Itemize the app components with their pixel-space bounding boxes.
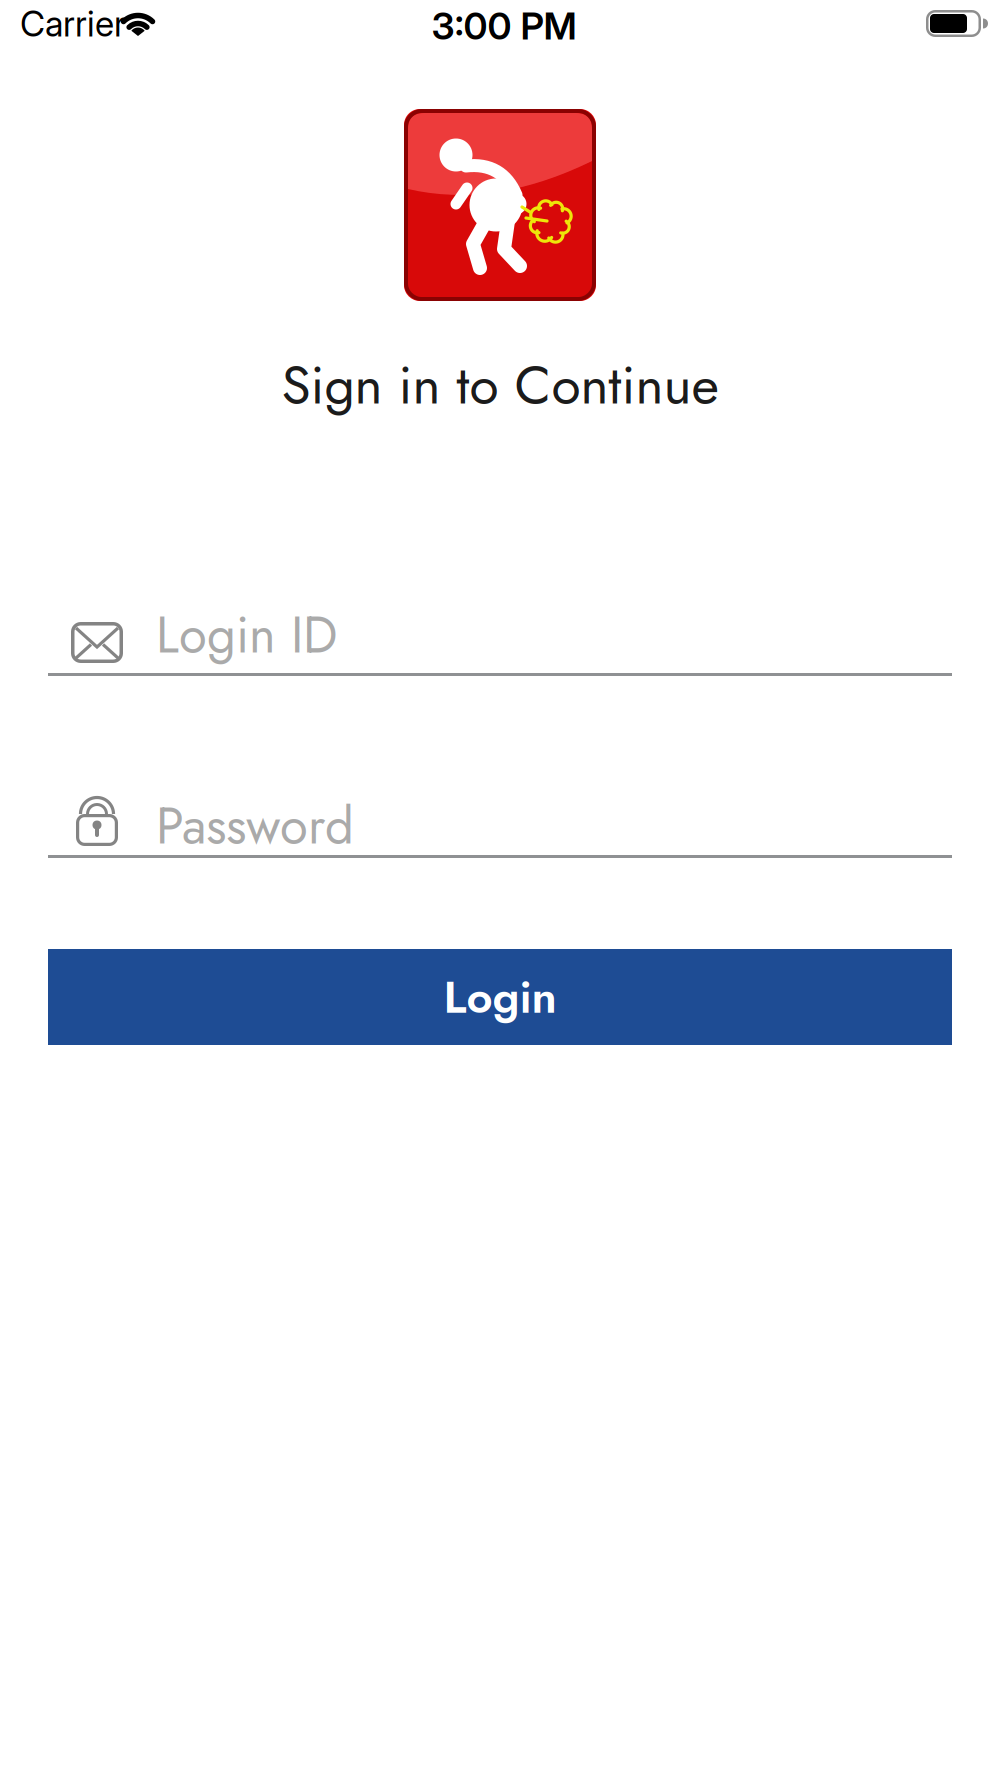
staticText: Carrier	[20, 3, 126, 45]
staticText: Sign in to Continue	[281, 346, 718, 424]
staticText: Login	[443, 964, 556, 1030]
button[interactable]: Password	[48, 782, 952, 862]
staticText: 3:00 PM	[431, 3, 576, 49]
staticText: Login ID	[156, 598, 337, 672]
button[interactable]: Login	[48, 949, 952, 1045]
button[interactable]: Login ID	[48, 600, 952, 680]
staticText: Password	[156, 789, 354, 863]
